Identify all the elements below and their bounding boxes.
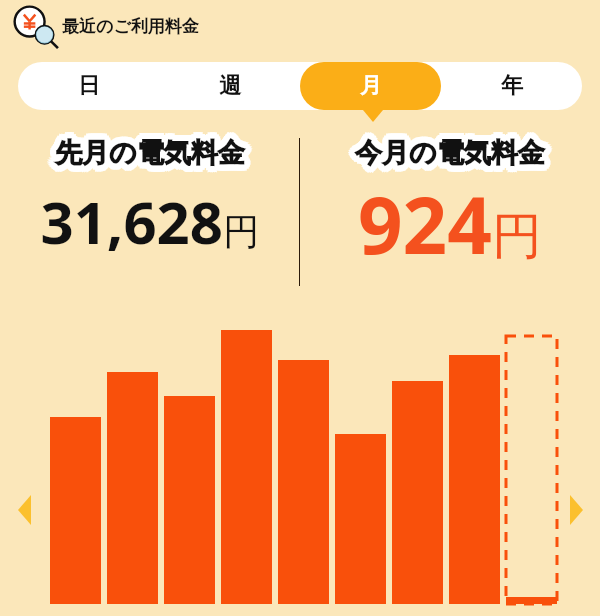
staticText: 月 [360, 72, 382, 100]
staticText: 年 [501, 72, 523, 100]
button[interactable]: Next period [556, 486, 596, 526]
button[interactable]: 月 [300, 62, 441, 110]
button[interactable]: 年 [441, 62, 582, 110]
button[interactable]: 週 [159, 62, 300, 110]
button[interactable]: 日 [18, 62, 159, 110]
staticText: 週 [219, 72, 241, 100]
staticText: 日 [78, 72, 100, 100]
staticText: 最近のご利用料金 [62, 16, 199, 37]
button[interactable]: Previous period [6, 486, 46, 526]
